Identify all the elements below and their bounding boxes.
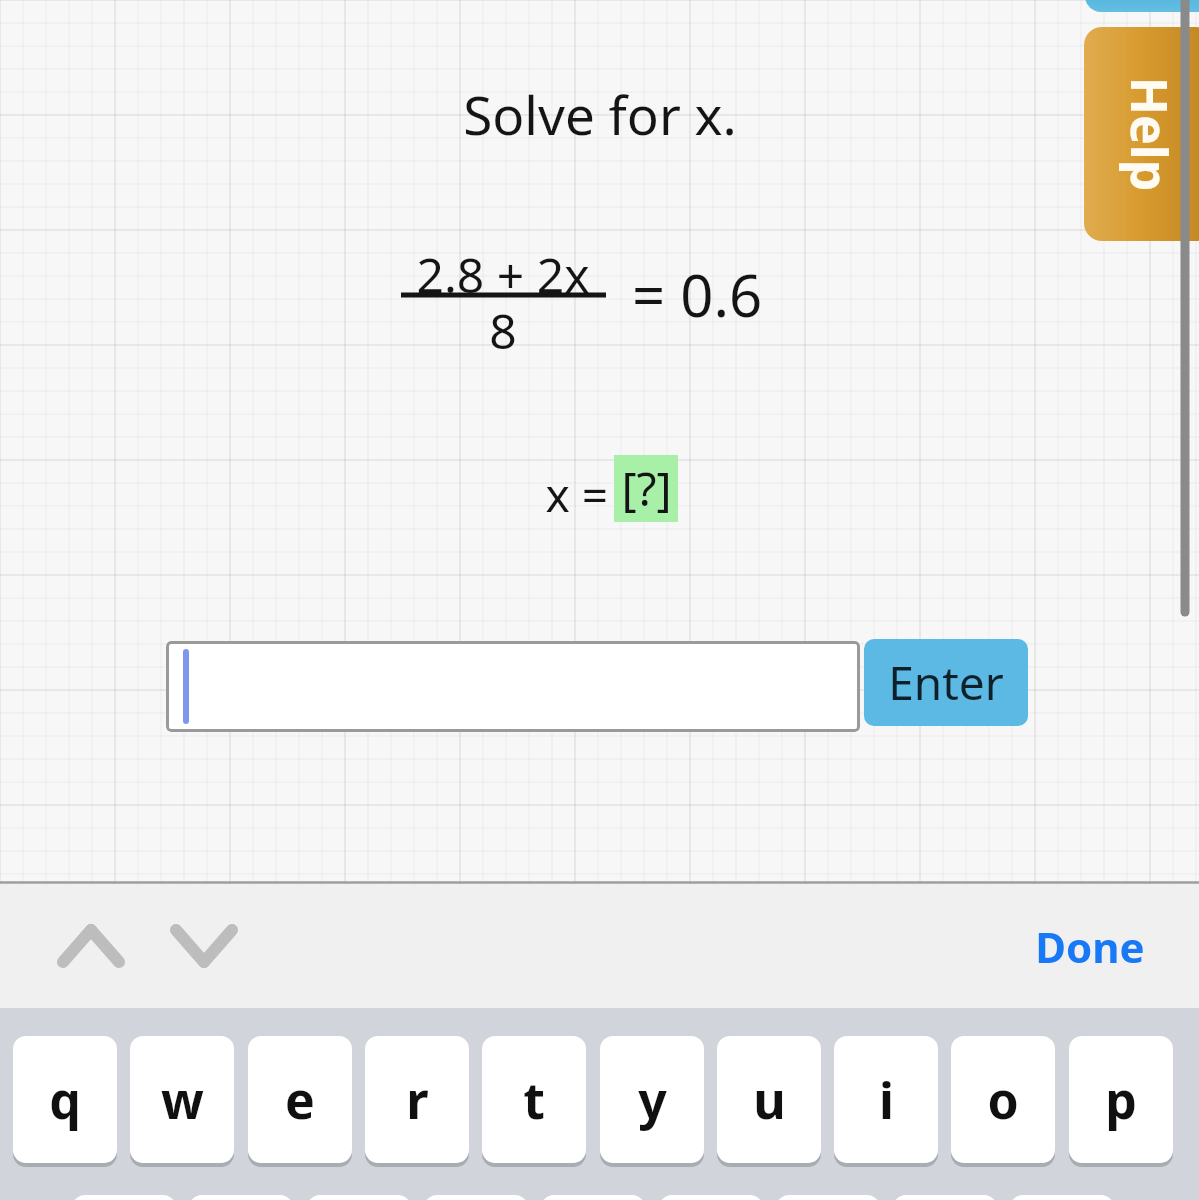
button[interactable]: q <box>13 1036 117 1163</box>
staticText: t <box>523 1066 545 1134</box>
staticText: o <box>987 1066 1019 1134</box>
button[interactable]: Previous field <box>46 908 136 984</box>
button[interactable]: i <box>834 1036 938 1163</box>
staticText: e <box>285 1066 315 1134</box>
staticText: 2.8 + 2x <box>353 242 653 302</box>
button[interactable]: Tab <box>1085 0 1199 12</box>
button[interactable]: p <box>1069 1036 1173 1163</box>
staticText: w <box>161 1066 204 1134</box>
button[interactable]: r <box>365 1036 469 1163</box>
button[interactable]: a <box>72 1195 176 1200</box>
staticText: x = <box>360 463 608 521</box>
staticText: r <box>406 1066 429 1134</box>
staticText: i <box>879 1066 894 1134</box>
button[interactable]: w <box>130 1036 234 1163</box>
button[interactable]: y <box>600 1036 704 1163</box>
button[interactable]: e <box>248 1036 352 1163</box>
button[interactable]: Help <box>1084 27 1199 241</box>
staticText: [?] <box>621 457 672 520</box>
staticText: u <box>753 1066 786 1134</box>
staticText: Enter <box>888 651 1004 714</box>
staticText: = 0.6 <box>632 255 892 331</box>
button[interactable]: Done <box>1010 908 1170 984</box>
staticText: Solve for x. <box>300 78 900 148</box>
staticText: 8 <box>353 298 653 358</box>
button[interactable]: [?] <box>614 455 678 522</box>
staticText: p <box>1105 1066 1137 1134</box>
button[interactable]: s <box>189 1195 293 1200</box>
button[interactable]: Enter <box>864 639 1028 726</box>
button[interactable]: o <box>951 1036 1055 1163</box>
staticText: Help <box>1115 76 1183 191</box>
button[interactable]: Next field <box>159 908 249 984</box>
staticText: y <box>638 1066 667 1134</box>
button[interactable]: h <box>659 1195 763 1200</box>
button[interactable]: Answer input field <box>166 641 860 732</box>
button[interactable]: k <box>893 1195 997 1200</box>
button[interactable]: t <box>482 1036 586 1163</box>
button[interactable]: d <box>307 1195 411 1200</box>
staticText: q <box>49 1066 81 1134</box>
button[interactable]: j <box>776 1195 880 1200</box>
button[interactable]: g <box>541 1195 645 1200</box>
staticText: Done <box>1035 918 1145 975</box>
button[interactable]: u <box>717 1036 821 1163</box>
button[interactable]: f <box>424 1195 528 1200</box>
button[interactable]: l <box>1010 1195 1114 1200</box>
